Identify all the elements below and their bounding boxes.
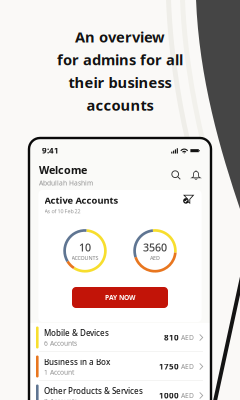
staticText: An overview — [75, 27, 165, 46]
staticText: Active Accounts — [44, 194, 118, 206]
staticText: 1750 — [159, 361, 179, 372]
staticText: 1000 — [159, 390, 179, 400]
staticText: Abdullah Hashim — [39, 178, 93, 187]
staticText: AED — [179, 333, 194, 342]
button[interactable]: PAY NOW — [72, 287, 168, 308]
staticText: 6 Accounts — [44, 339, 77, 347]
staticText: 810 — [164, 332, 179, 343]
staticText: AED — [179, 362, 194, 371]
staticText: for admins for all — [57, 50, 183, 69]
staticText: Business in a Box — [44, 356, 110, 367]
staticText: Other Products & Services — [44, 385, 143, 396]
staticText: AED — [150, 254, 160, 261]
button[interactable]: Search — [171, 170, 181, 180]
staticText: 1 Account — [44, 368, 74, 376]
button[interactable]: Other Products & Services — [29, 381, 211, 400]
staticText: As of 10 Feb 22 — [44, 208, 80, 215]
staticText: Welcome — [39, 163, 87, 177]
staticText: 10 — [79, 240, 91, 254]
staticText: 3560 — [143, 240, 167, 254]
staticText: ACCOUNTS — [71, 254, 98, 261]
button[interactable]: Notifications — [181, 170, 201, 180]
staticText: 2 Accounts — [44, 397, 77, 400]
staticText: accounts — [86, 95, 153, 115]
staticText: Mobile & Devices — [44, 327, 109, 338]
button[interactable]: Business in a Box — [29, 352, 211, 381]
staticText: PAY NOW — [105, 293, 135, 302]
staticText: their business — [68, 73, 171, 92]
staticText: AED — [179, 391, 194, 400]
button[interactable]: Filter — [183, 194, 194, 204]
button[interactable]: Mobile & Devices — [29, 323, 211, 352]
staticText: 9:41 — [42, 145, 59, 156]
